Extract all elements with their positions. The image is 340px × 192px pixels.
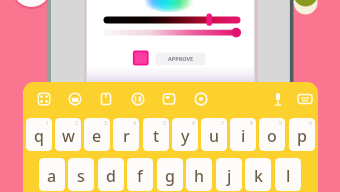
staticText: 3 [104, 120, 107, 127]
staticText: t [153, 125, 160, 147]
button[interactable]: j [216, 158, 242, 191]
staticText: 5 [163, 120, 166, 127]
button[interactable]: Themes [94, 87, 118, 111]
staticText: d [106, 165, 116, 187]
staticText: i [241, 125, 246, 147]
staticText: j [227, 165, 232, 187]
staticText: g [165, 165, 175, 187]
button[interactable]: s [68, 158, 94, 191]
button[interactable]: Stickers [63, 87, 87, 111]
button[interactable]: Clipboard [157, 87, 181, 111]
button[interactable]: Settings [189, 87, 213, 111]
button[interactable]: k [245, 158, 271, 191]
staticText: 1 [46, 120, 49, 127]
staticText: o [267, 125, 277, 147]
staticText: u [209, 125, 220, 147]
staticText: 8 [250, 120, 253, 127]
staticText: 4 [133, 120, 136, 127]
staticText: f [137, 165, 143, 187]
staticText: APPROVE [168, 55, 194, 62]
button[interactable]: w [55, 118, 81, 151]
button[interactable]: p [289, 118, 315, 151]
button[interactable]: r [113, 118, 139, 151]
staticText: w [62, 125, 75, 147]
button[interactable]: u [201, 118, 227, 151]
button[interactable]: l [275, 158, 301, 191]
staticText: r [123, 125, 130, 147]
button[interactable]: g [157, 158, 183, 191]
staticText: q [34, 125, 44, 147]
button[interactable]: GIF [126, 87, 150, 111]
staticText: p [297, 125, 307, 147]
button[interactable]: Keyboard [293, 87, 317, 111]
button[interactable]: y [172, 118, 198, 151]
staticText: h [194, 165, 205, 187]
staticText: e [92, 125, 102, 147]
staticText: 0 [309, 120, 312, 127]
staticText: l [286, 165, 291, 187]
staticText: a [47, 165, 57, 187]
staticText: 9 [279, 120, 282, 127]
button[interactable]: a [39, 158, 65, 191]
button[interactable]: Voice input [266, 87, 290, 111]
staticText: 7 [221, 120, 224, 127]
button[interactable]: o [259, 118, 285, 151]
button[interactable]: f [127, 158, 153, 191]
button[interactable]: h [186, 158, 212, 191]
button[interactable]: i [230, 118, 256, 151]
staticText: y [181, 125, 190, 147]
button[interactable]: t [143, 118, 169, 151]
staticText: 6 [192, 120, 195, 127]
button[interactable]: Apps [32, 87, 56, 111]
staticText: k [254, 165, 263, 187]
button[interactable]: d [98, 158, 124, 191]
button[interactable]: q [26, 118, 52, 151]
button[interactable]: APPROVE [155, 52, 206, 65]
staticText: 2 [75, 120, 78, 127]
button[interactable]: e [84, 118, 110, 151]
staticText: s [77, 165, 85, 187]
